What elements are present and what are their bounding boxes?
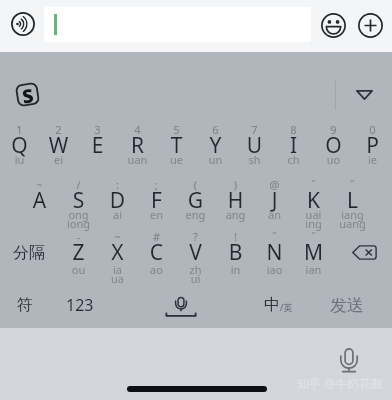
staticText: ˝ bbox=[294, 229, 333, 244]
button[interactable]: Voice message bbox=[7, 8, 39, 40]
staticText: P bbox=[353, 131, 392, 160]
staticText: 1 bbox=[0, 122, 39, 137]
staticText: uang bbox=[333, 216, 372, 231]
staticText: ~ bbox=[98, 229, 137, 244]
staticText: J bbox=[255, 186, 294, 215]
button[interactable]: 8 bbox=[274, 122, 313, 174]
button[interactable]: / bbox=[59, 177, 98, 229]
button[interactable]: Space bbox=[121, 288, 241, 322]
staticText: an bbox=[255, 207, 294, 222]
button[interactable]: 0 bbox=[353, 122, 392, 174]
button[interactable]: 符 bbox=[0, 288, 50, 322]
button[interactable]: 3 bbox=[78, 122, 117, 174]
staticText: ( bbox=[176, 177, 215, 192]
button[interactable]: ? bbox=[176, 229, 215, 281]
staticText: 知乎 @牛奶花瓶 bbox=[297, 375, 383, 391]
staticText: # bbox=[137, 229, 176, 244]
staticText: Y bbox=[196, 131, 235, 160]
staticText: eng bbox=[176, 207, 215, 222]
button[interactable]: 9 bbox=[314, 122, 353, 174]
staticText: 0 bbox=[353, 122, 392, 137]
staticText: iao bbox=[255, 262, 294, 277]
button[interactable]: ˝ bbox=[333, 177, 372, 229]
staticText: 7 bbox=[235, 122, 274, 137]
staticText: D bbox=[98, 186, 137, 215]
staticText: ing bbox=[294, 216, 333, 231]
staticText: iong bbox=[59, 216, 98, 231]
button[interactable]: Add bbox=[354, 9, 386, 41]
staticText: zh bbox=[176, 262, 215, 277]
staticText: O bbox=[314, 131, 353, 160]
button[interactable]: 中 bbox=[248, 288, 308, 322]
staticText: /英 bbox=[280, 301, 293, 313]
button[interactable]: ˝ bbox=[255, 229, 294, 281]
staticText: un bbox=[196, 152, 235, 167]
button[interactable]: @ bbox=[255, 177, 294, 229]
staticText: en bbox=[137, 207, 176, 222]
staticText: U bbox=[235, 131, 274, 160]
staticText: C bbox=[137, 238, 176, 267]
button[interactable]: 分隔 bbox=[0, 229, 58, 277]
staticText: T bbox=[157, 131, 196, 160]
staticText: 9 bbox=[314, 122, 353, 137]
staticText: Z bbox=[59, 238, 98, 267]
staticText: iang bbox=[333, 207, 372, 222]
staticText: A bbox=[20, 186, 59, 215]
staticText: ei bbox=[39, 152, 78, 167]
staticText: @ bbox=[255, 177, 294, 192]
button[interactable]: ˝ bbox=[294, 229, 333, 281]
button[interactable]: ( bbox=[176, 177, 215, 229]
button[interactable] bbox=[44, 7, 311, 42]
staticText: ue bbox=[157, 152, 196, 167]
staticText: R bbox=[118, 131, 157, 160]
button[interactable]: ~ bbox=[20, 177, 59, 229]
button[interactable]: ~ bbox=[98, 229, 137, 281]
staticText: 4 bbox=[118, 122, 157, 137]
button[interactable]: Emoji bbox=[317, 9, 349, 41]
staticText: V bbox=[176, 238, 215, 267]
button[interactable]: Sogou input bbox=[13, 80, 41, 108]
button[interactable]: 123 bbox=[55, 288, 105, 322]
staticText: 6 bbox=[196, 122, 235, 137]
staticText: 发送 bbox=[330, 295, 364, 316]
button[interactable]: ) bbox=[216, 177, 255, 229]
staticText: in bbox=[216, 262, 255, 277]
staticText: ong bbox=[59, 207, 98, 222]
staticText: ch bbox=[274, 152, 313, 167]
staticText: : bbox=[98, 177, 137, 192]
button[interactable]: 2 bbox=[39, 122, 78, 174]
staticText: 123 bbox=[66, 294, 94, 316]
staticText: ao bbox=[137, 262, 176, 277]
staticText: ie bbox=[353, 152, 392, 167]
button[interactable]: - bbox=[59, 229, 98, 281]
button[interactable]: 4 bbox=[118, 122, 157, 174]
button[interactable]: Voice input bbox=[334, 343, 364, 379]
button[interactable]: 6 bbox=[196, 122, 235, 174]
button[interactable]: 发送 bbox=[310, 288, 384, 322]
staticText: / bbox=[59, 177, 98, 192]
staticText: 符 bbox=[17, 295, 33, 315]
staticText: ian bbox=[294, 262, 333, 277]
button[interactable]: # bbox=[137, 229, 176, 281]
staticText: ; bbox=[137, 177, 176, 192]
button[interactable]: Hide keyboard bbox=[350, 84, 378, 106]
staticText: iu bbox=[0, 152, 39, 167]
staticText: Q bbox=[0, 131, 39, 160]
staticText: ) bbox=[216, 177, 255, 192]
button[interactable]: : bbox=[98, 177, 137, 229]
staticText: S bbox=[59, 186, 98, 215]
staticText: S bbox=[20, 82, 35, 107]
button[interactable]: ! bbox=[216, 229, 255, 281]
button[interactable]: 1 bbox=[0, 122, 39, 174]
button[interactable]: ; bbox=[137, 177, 176, 229]
staticText: 3 bbox=[78, 122, 117, 137]
staticText: - bbox=[59, 229, 98, 244]
button[interactable]: 7 bbox=[235, 122, 274, 174]
button[interactable]: Backspace bbox=[335, 228, 392, 276]
staticText: I bbox=[274, 131, 313, 160]
button[interactable]: ˝ bbox=[294, 177, 333, 229]
button[interactable]: 5 bbox=[157, 122, 196, 174]
staticText: N bbox=[255, 238, 294, 267]
staticText: W bbox=[39, 131, 78, 160]
